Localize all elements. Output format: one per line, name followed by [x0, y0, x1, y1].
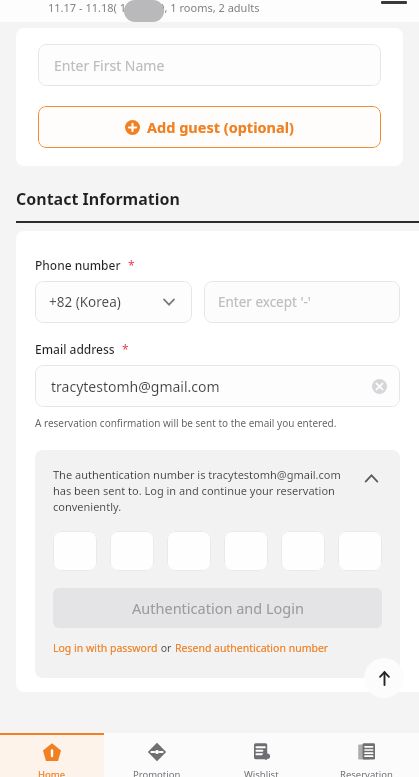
staticText: The authentication number is tracytestom… [53, 467, 352, 514]
button[interactable]: Home [0, 733, 104, 777]
staticText: Reservation [340, 768, 393, 777]
button[interactable]: Wishlist [209, 733, 314, 777]
staticText: +82 (Korea) [49, 293, 121, 311]
button[interactable]: Reservation [314, 733, 419, 777]
staticText: Enter First Name [54, 56, 165, 75]
staticText: Authentication and Login [132, 598, 304, 618]
button[interactable]: Log in with password [53, 641, 158, 655]
staticText: tracytestomh@gmail.com [51, 377, 220, 396]
button[interactable]: Scroll to top [364, 658, 404, 698]
button[interactable]: Collapse [360, 467, 382, 489]
staticText: Home [38, 768, 66, 777]
staticText: Contact Information [16, 188, 180, 210]
staticText: * [122, 341, 129, 357]
staticText: * [128, 257, 135, 273]
button[interactable]: Promotion [104, 733, 209, 777]
button[interactable]: Digit 5 [281, 531, 325, 571]
button[interactable]: Add guest (optional) [38, 106, 381, 148]
staticText: 11.17 - 11.18( 1 nights), 1 rooms, 2 adu… [48, 0, 260, 15]
other: Menu [381, 1, 407, 4]
button[interactable]: Enter except '-' [204, 281, 400, 323]
staticText: Phone number [35, 257, 121, 273]
button[interactable]: Digit 1 [53, 531, 97, 571]
button[interactable]: Digit 4 [224, 531, 268, 571]
staticText: or [158, 641, 175, 655]
staticText: Wishlist [244, 768, 279, 777]
button[interactable]: Digit 2 [110, 531, 154, 571]
staticText: Add guest (optional) [147, 117, 294, 137]
button[interactable]: Authentication and Login [53, 588, 382, 628]
button[interactable]: tracytestomh@gmail.com [35, 365, 400, 407]
button[interactable]: Clear email [372, 379, 387, 394]
staticText: Enter except '-' [218, 293, 311, 311]
staticText: Promotion [133, 768, 181, 777]
button[interactable]: Digit 6 [338, 531, 382, 571]
button[interactable]: Resend authentication number [175, 641, 329, 655]
button[interactable]: +82 (Korea) [35, 281, 192, 323]
button[interactable]: Digit 3 [167, 531, 211, 571]
staticText: Email address [35, 341, 115, 357]
staticText: A reservation confirmation will be sent … [35, 416, 337, 430]
button[interactable]: Enter First Name [38, 44, 381, 86]
